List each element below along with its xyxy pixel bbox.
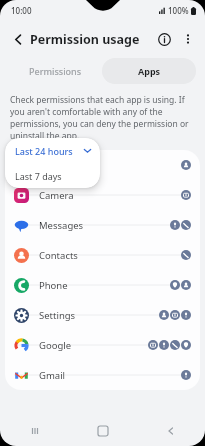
- staticText: Contacts: [39, 249, 78, 262]
- staticText: Last 24 hours: [15, 145, 73, 157]
- button[interactable]: More options: [176, 27, 200, 51]
- staticText: Last 7 days: [15, 170, 62, 182]
- button[interactable]: Home: [69, 416, 137, 446]
- button[interactable]: Information: [152, 27, 176, 51]
- button[interactable]: Apps: [102, 58, 196, 84]
- staticText: Permission usage: [30, 31, 140, 48]
- staticText: Gmail: [39, 369, 66, 382]
- staticText: Permissions: [29, 65, 82, 77]
- button[interactable]: [5, 150, 200, 180]
- staticText: Camera: [39, 189, 74, 202]
- button[interactable]: Permissions: [9, 58, 102, 84]
- button[interactable]: Recents: [0, 416, 69, 446]
- button[interactable]: Contacts: [5, 240, 200, 270]
- staticText: Settings: [39, 309, 76, 322]
- button[interactable]: Google: [5, 330, 200, 360]
- button[interactable]: Phone: [5, 270, 200, 300]
- button[interactable]: Gmail: [5, 360, 200, 390]
- staticText: 10:00: [11, 5, 32, 16]
- staticText: 100%: [168, 5, 189, 16]
- button[interactable]: Settings: [5, 300, 200, 330]
- button[interactable]: Back: [137, 416, 205, 446]
- staticText: Google: [39, 339, 72, 352]
- button[interactable]: Messages: [5, 210, 200, 240]
- staticText: Check permissions that each app is using…: [10, 94, 193, 142]
- button[interactable]: Camera: [5, 180, 200, 210]
- staticText: Phone: [39, 279, 68, 292]
- button[interactable]: Last 7 days: [5, 163, 100, 188]
- staticText: Apps: [138, 65, 161, 77]
- button[interactable]: Back: [6, 27, 30, 51]
- button[interactable]: Last 24 hours: [5, 138, 100, 163]
- staticText: Messages: [39, 219, 84, 232]
